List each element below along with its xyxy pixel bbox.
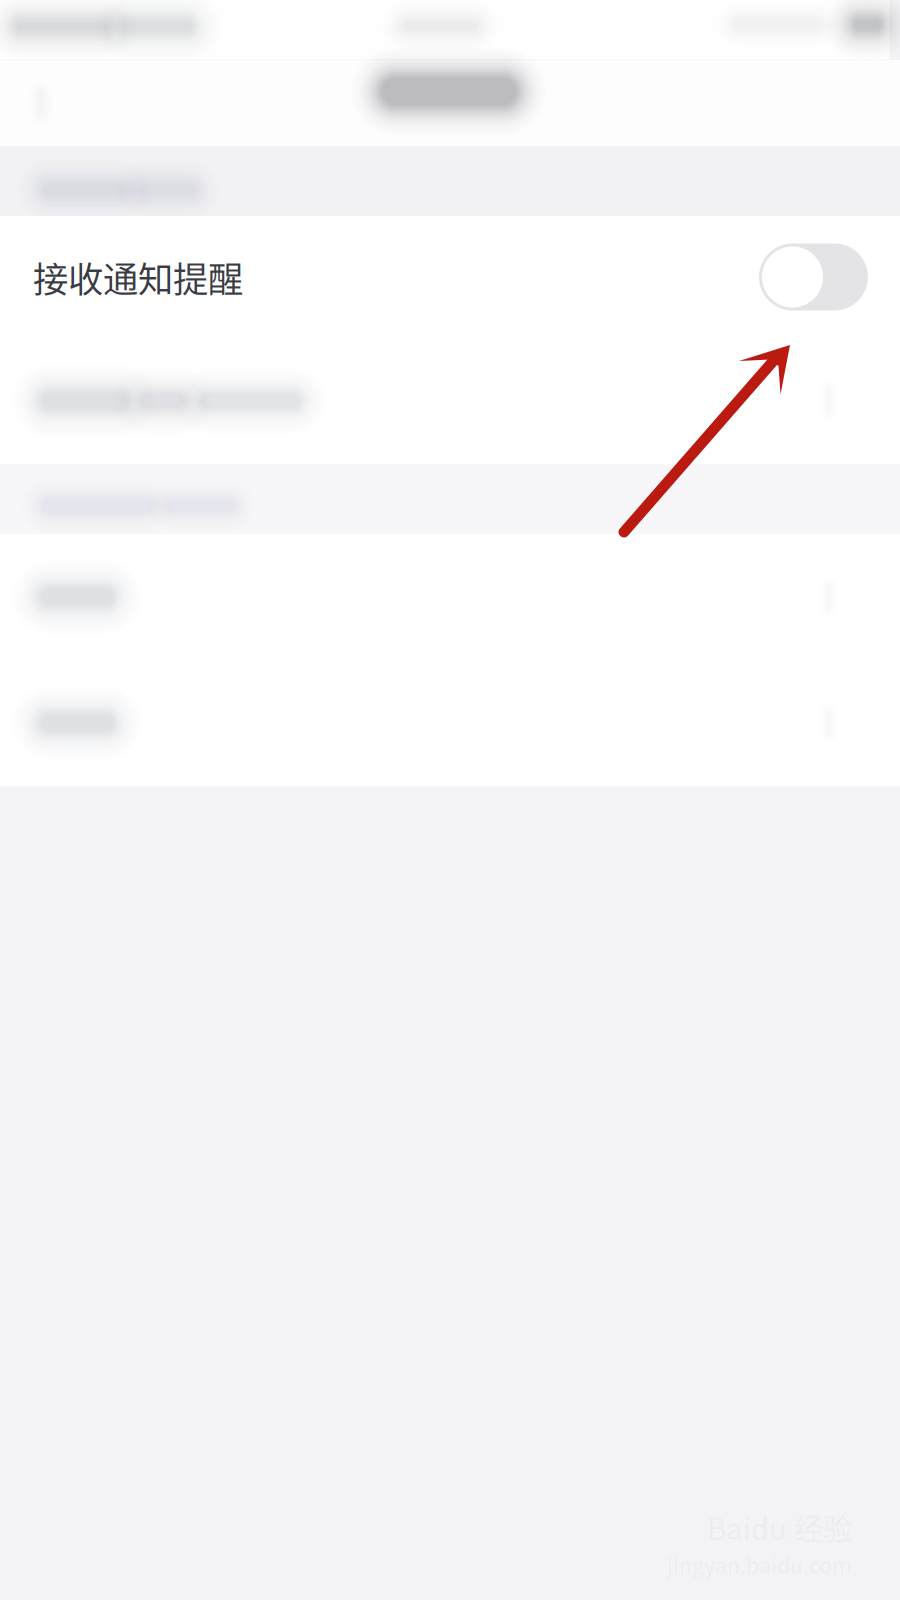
button[interactable] xyxy=(0,660,900,786)
button[interactable] xyxy=(0,338,900,464)
button[interactable] xyxy=(0,534,900,660)
staticText: 接收通知提醒 xyxy=(33,251,243,303)
button[interactable]: 接收通知提醒 xyxy=(0,216,900,338)
